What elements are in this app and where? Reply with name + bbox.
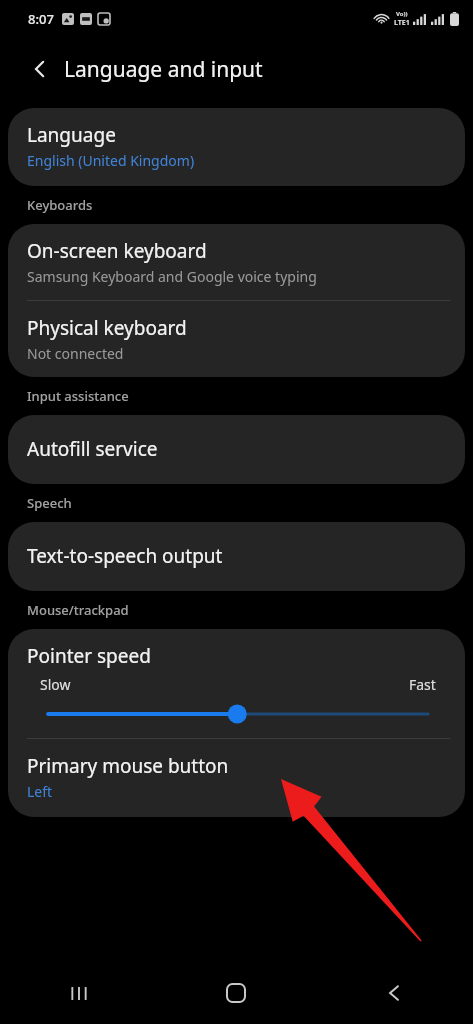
staticText: Physical keyboard (27, 315, 187, 341)
button[interactable]: Language (8, 108, 465, 186)
staticText: Language (27, 122, 116, 148)
staticText: Keyboards (27, 196, 93, 214)
button[interactable]: Autofill service (8, 415, 465, 484)
button[interactable]: On-screen keyboard (8, 224, 465, 300)
staticText: Samsung Keyboard and Google voice typing (27, 267, 317, 286)
button[interactable]: Recents (0, 962, 157, 1024)
staticText: Input assistance (27, 387, 129, 405)
staticText: Left (27, 782, 53, 801)
button[interactable]: Back (315, 962, 473, 1024)
button[interactable]: Back (18, 47, 62, 91)
staticText: Text-to-speech output (27, 543, 223, 569)
button[interactable]: Home (157, 962, 315, 1024)
button[interactable]: Primary mouse button (8, 739, 465, 817)
staticText: Language and input (64, 55, 263, 84)
staticText: Primary mouse button (27, 753, 229, 779)
staticText: Slow (40, 675, 71, 694)
staticText: Fast (409, 675, 436, 694)
staticText: On-screen keyboard (27, 238, 207, 264)
staticText: English (United Kingdom) (27, 151, 195, 170)
staticText: Speech (27, 494, 72, 512)
button[interactable]: Pointer speed slider (27, 704, 449, 724)
staticText: 8:07 (28, 10, 54, 28)
staticText: Pointer speed (27, 643, 151, 669)
button[interactable]: Pointer speed (8, 629, 465, 738)
staticText: Vo)) (396, 10, 408, 18)
button[interactable]: Text-to-speech output (8, 522, 465, 591)
staticText: Mouse/trackpad (27, 601, 129, 619)
button[interactable]: Physical keyboard (8, 301, 465, 377)
staticText: Autofill service (27, 436, 158, 462)
staticText: LTE1 (394, 18, 410, 28)
staticText: Not connected (27, 344, 124, 363)
